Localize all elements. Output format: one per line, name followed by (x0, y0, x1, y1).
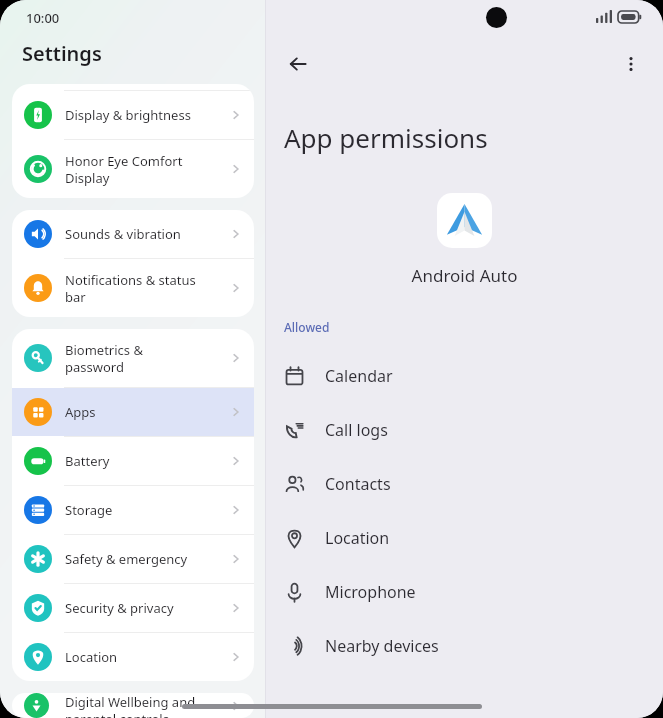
staticText: Display & brightness (65, 106, 230, 124)
staticText: Call logs (325, 419, 388, 441)
button[interactable]: Back (280, 46, 316, 82)
staticText: Nearby devices (325, 635, 439, 657)
button[interactable]: Call logs (266, 403, 663, 457)
button[interactable]: Location (12, 633, 254, 681)
staticText: Calendar (325, 365, 393, 387)
staticText: Storage (65, 501, 230, 519)
staticText: Notifications & status bar (65, 271, 230, 306)
button[interactable]: Battery (12, 437, 254, 485)
staticText: Location (325, 527, 390, 549)
button[interactable]: Location (266, 511, 663, 565)
button[interactable]: Honor Eye Comfort Display (12, 140, 254, 198)
button[interactable]: Safety & emergency (12, 535, 254, 583)
staticText: Battery (65, 452, 230, 470)
button[interactable]: Sounds & vibration (12, 210, 254, 258)
staticText: Sounds & vibration (65, 225, 230, 243)
button[interactable]: More options (613, 46, 649, 82)
staticText: Apps (65, 403, 230, 421)
staticText: Honor Eye Comfort Display (65, 152, 230, 187)
staticText: Contacts (325, 473, 391, 495)
button[interactable]: Display & brightness (12, 91, 254, 139)
button[interactable]: Notifications & status bar (12, 259, 254, 317)
staticText: Allowed (284, 319, 330, 335)
button[interactable]: Security & privacy (12, 584, 254, 632)
button[interactable]: Microphone (266, 565, 663, 619)
button[interactable]: Calendar (266, 349, 663, 403)
staticText: Security & privacy (65, 599, 230, 617)
staticText: Biometrics & password (65, 341, 230, 376)
staticText: 10:00 (26, 9, 60, 27)
button[interactable]: Digital Wellbeing and parental controls (12, 693, 254, 718)
staticText: Safety & emergency (65, 550, 230, 568)
staticText: App permissions (284, 120, 488, 155)
button[interactable]: Contacts (266, 457, 663, 511)
button[interactable]: Storage (12, 486, 254, 534)
button[interactable]: Biometrics & password (12, 329, 254, 387)
staticText: Digital Wellbeing and parental controls (65, 693, 230, 718)
staticText: Location (65, 648, 230, 666)
button[interactable]: Apps (12, 388, 254, 436)
button[interactable]: Nearby devices (266, 619, 663, 673)
staticText: Settings (22, 40, 102, 67)
staticText: Microphone (325, 581, 416, 603)
staticText: Android Auto (266, 264, 663, 287)
